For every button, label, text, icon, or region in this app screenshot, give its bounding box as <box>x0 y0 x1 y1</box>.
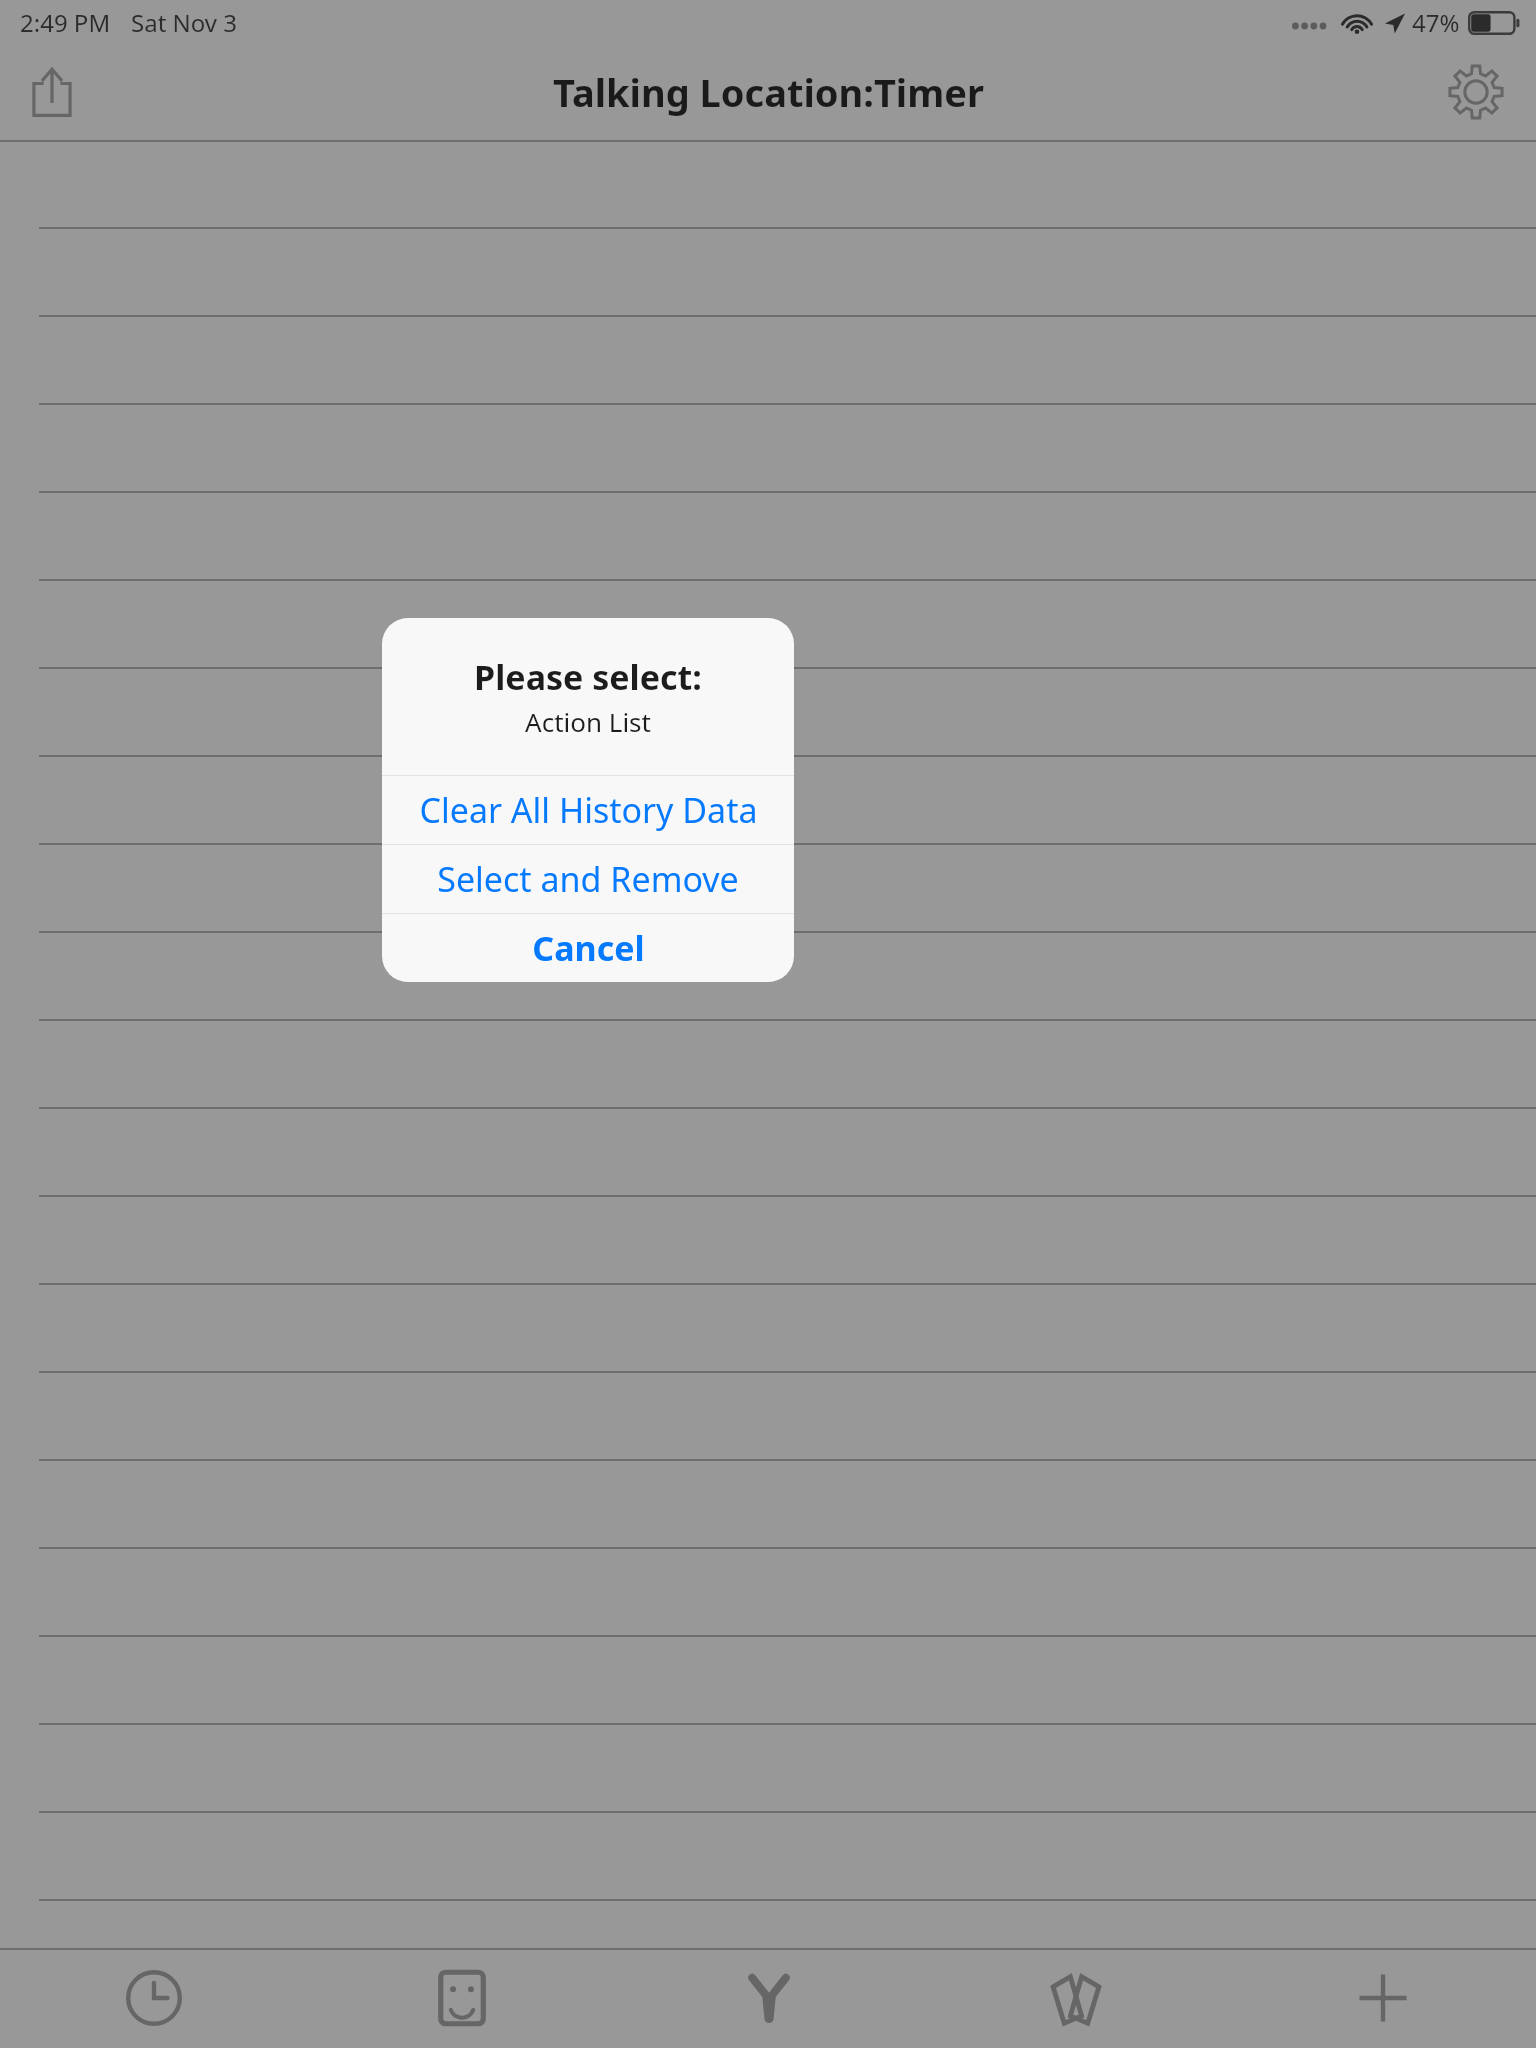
button[interactable]: Mood <box>308 1948 615 2048</box>
staticText: 47% <box>1412 6 1460 39</box>
button[interactable]: Select and Remove <box>382 845 794 913</box>
staticText: Clear All History Data <box>419 787 758 833</box>
staticText: Select and Remove <box>437 856 739 902</box>
button[interactable]: Branch <box>615 1948 922 2048</box>
staticText: Action List <box>525 704 651 739</box>
button[interactable]: History <box>0 1948 308 2048</box>
button[interactable]: Cancel <box>382 914 794 982</box>
staticText: 2:49 PM <box>20 6 111 39</box>
staticText: Cancel <box>532 925 645 971</box>
staticText: Please select: <box>474 654 702 700</box>
button[interactable]: Share <box>8 48 96 136</box>
staticText: Talking Location:Timer <box>553 66 984 118</box>
button[interactable]: Add <box>1229 1948 1536 2048</box>
button[interactable]: Clear All History Data <box>382 776 794 844</box>
button[interactable]: Compare <box>922 1948 1229 2048</box>
button[interactable]: Settings <box>1432 48 1520 136</box>
staticText: Sat Nov 3 <box>131 6 237 39</box>
